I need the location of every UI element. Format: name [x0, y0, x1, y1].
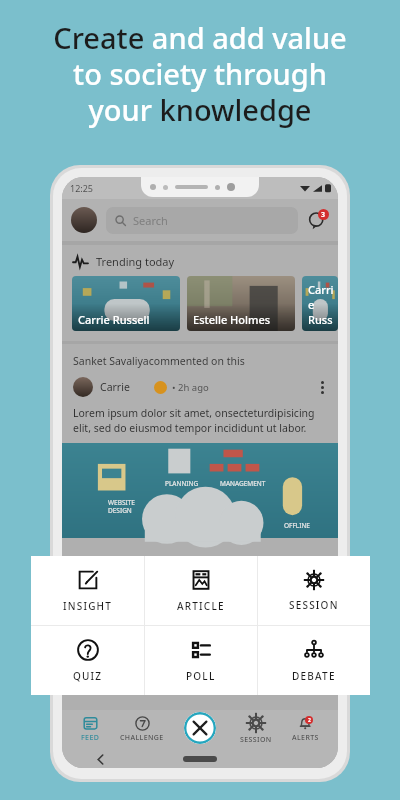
staticText: • 2h ago: [172, 381, 209, 394]
staticText: Carrie Russell: [78, 312, 150, 327]
staticText: QUIZ: [73, 669, 103, 683]
staticText: 12:25: [70, 182, 94, 194]
staticText: 2: [308, 717, 311, 724]
staticText: Lorem ipsum dolor sit amet, onsecteturdi…: [73, 406, 328, 435]
staticText: DEBATE: [292, 669, 336, 683]
button[interactable]: SESSION: [258, 556, 370, 625]
staticText: INSIGHT: [63, 599, 113, 613]
staticText: Trending today: [96, 254, 175, 269]
staticText: 3: [321, 210, 326, 220]
button[interactable]: Profile: [71, 207, 97, 233]
button[interactable]: CHALLENGE: [118, 716, 166, 743]
button[interactable]: DEBATE: [258, 626, 370, 695]
staticText: SESSION: [289, 598, 339, 612]
button[interactable]: Carrie Russ: [302, 276, 338, 331]
button[interactable]: Search: [106, 207, 298, 234]
staticText: ALERTS: [292, 733, 319, 743]
button[interactable]: SESSION: [238, 713, 274, 745]
button[interactable]: QUIZ: [31, 626, 144, 695]
staticText: OFFLINE: [284, 521, 310, 530]
staticText: Carrie Russ: [308, 282, 338, 327]
staticText: FEED: [81, 733, 100, 743]
staticText: POLL: [186, 669, 216, 683]
staticText: Estelle Holmes: [193, 312, 271, 327]
button[interactable]: ARTICLE: [145, 556, 257, 625]
button[interactable]: Messages: [307, 209, 329, 231]
staticText: MANAGEMENT: [220, 479, 266, 488]
button[interactable]: Close: [184, 712, 216, 744]
staticText: CHALLENGE: [120, 733, 164, 743]
button[interactable]: INSIGHT: [31, 556, 144, 625]
staticText: ARTICLE: [177, 599, 225, 613]
button[interactable]: FEED: [79, 716, 102, 743]
staticText: Sanket Savaliyacommented on this: [73, 354, 245, 368]
button[interactable]: POLL: [145, 626, 257, 695]
button[interactable]: 2: [290, 716, 321, 743]
staticText: Carrie: [100, 380, 130, 394]
staticText: Create and add value to society through …: [0, 18, 400, 130]
button[interactable]: More options: [318, 381, 327, 394]
staticText: SESSION: [240, 735, 272, 745]
button[interactable]: Estelle Holmes: [187, 276, 295, 331]
staticText: WEBSITE DESIGN: [108, 498, 135, 515]
staticText: PLANNING: [165, 479, 199, 488]
button[interactable]: Carrie Russell: [72, 276, 180, 331]
staticText: Search: [133, 213, 168, 228]
